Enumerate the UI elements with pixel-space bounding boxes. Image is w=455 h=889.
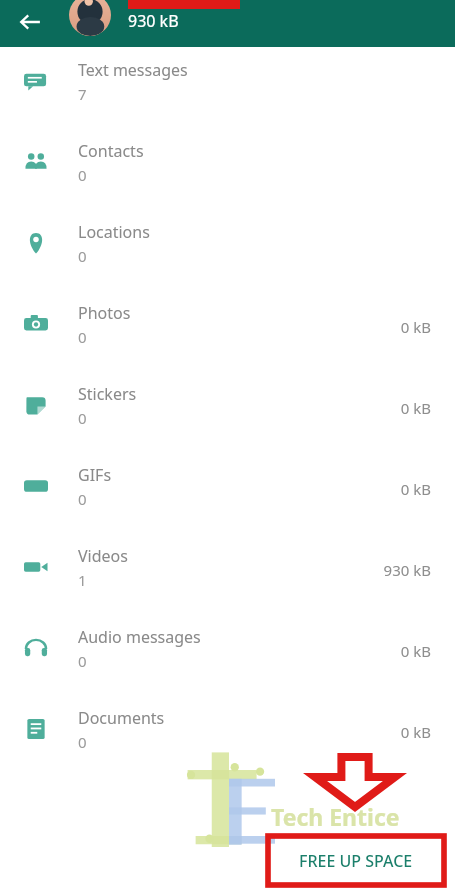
button[interactable]: Audio messages	[0, 614, 455, 695]
button[interactable]: FREE UP SPACE	[268, 836, 444, 885]
staticText: 930 kB	[383, 560, 431, 580]
staticText: 0 kB	[400, 479, 431, 499]
staticText: 0	[78, 651, 87, 671]
staticText: 7	[78, 84, 87, 104]
button[interactable]: Text messages	[0, 47, 455, 128]
staticText: Stickers	[78, 383, 137, 405]
staticText: 0	[78, 327, 87, 347]
button[interactable]: Photos	[0, 290, 455, 371]
button[interactable]: Back	[8, 0, 52, 44]
staticText: Audio messages	[78, 626, 201, 648]
staticText: FREE UP SPACE	[299, 850, 413, 872]
staticText: 0 kB	[400, 317, 431, 337]
staticText: Tech Entice	[271, 801, 400, 832]
button[interactable]: Videos	[0, 533, 455, 614]
staticText: Videos	[78, 545, 128, 567]
staticText: 0	[78, 489, 87, 509]
staticText: 0 kB	[400, 398, 431, 418]
staticText: 1	[78, 570, 87, 590]
staticText: GIFs	[78, 464, 112, 486]
staticText: Locations	[78, 221, 150, 243]
staticText: 0	[78, 165, 87, 185]
staticText: Contacts	[78, 140, 144, 162]
button[interactable]: Locations	[0, 209, 455, 290]
button[interactable]: Documents	[0, 695, 455, 776]
staticText: 0 kB	[400, 641, 431, 661]
staticText: Photos	[78, 302, 131, 324]
button[interactable]: GIFs	[0, 452, 455, 533]
staticText: 930 kB	[128, 10, 179, 32]
button[interactable]: Stickers	[0, 371, 455, 452]
staticText: 0	[78, 246, 87, 266]
button[interactable]: Profile photo	[69, 0, 111, 36]
staticText: 0	[78, 408, 87, 428]
staticText: Text messages	[78, 59, 188, 81]
staticText: 0 kB	[400, 722, 431, 742]
staticText: 0	[78, 732, 87, 752]
staticText: Documents	[78, 707, 165, 729]
button[interactable]: Contacts	[0, 128, 455, 209]
